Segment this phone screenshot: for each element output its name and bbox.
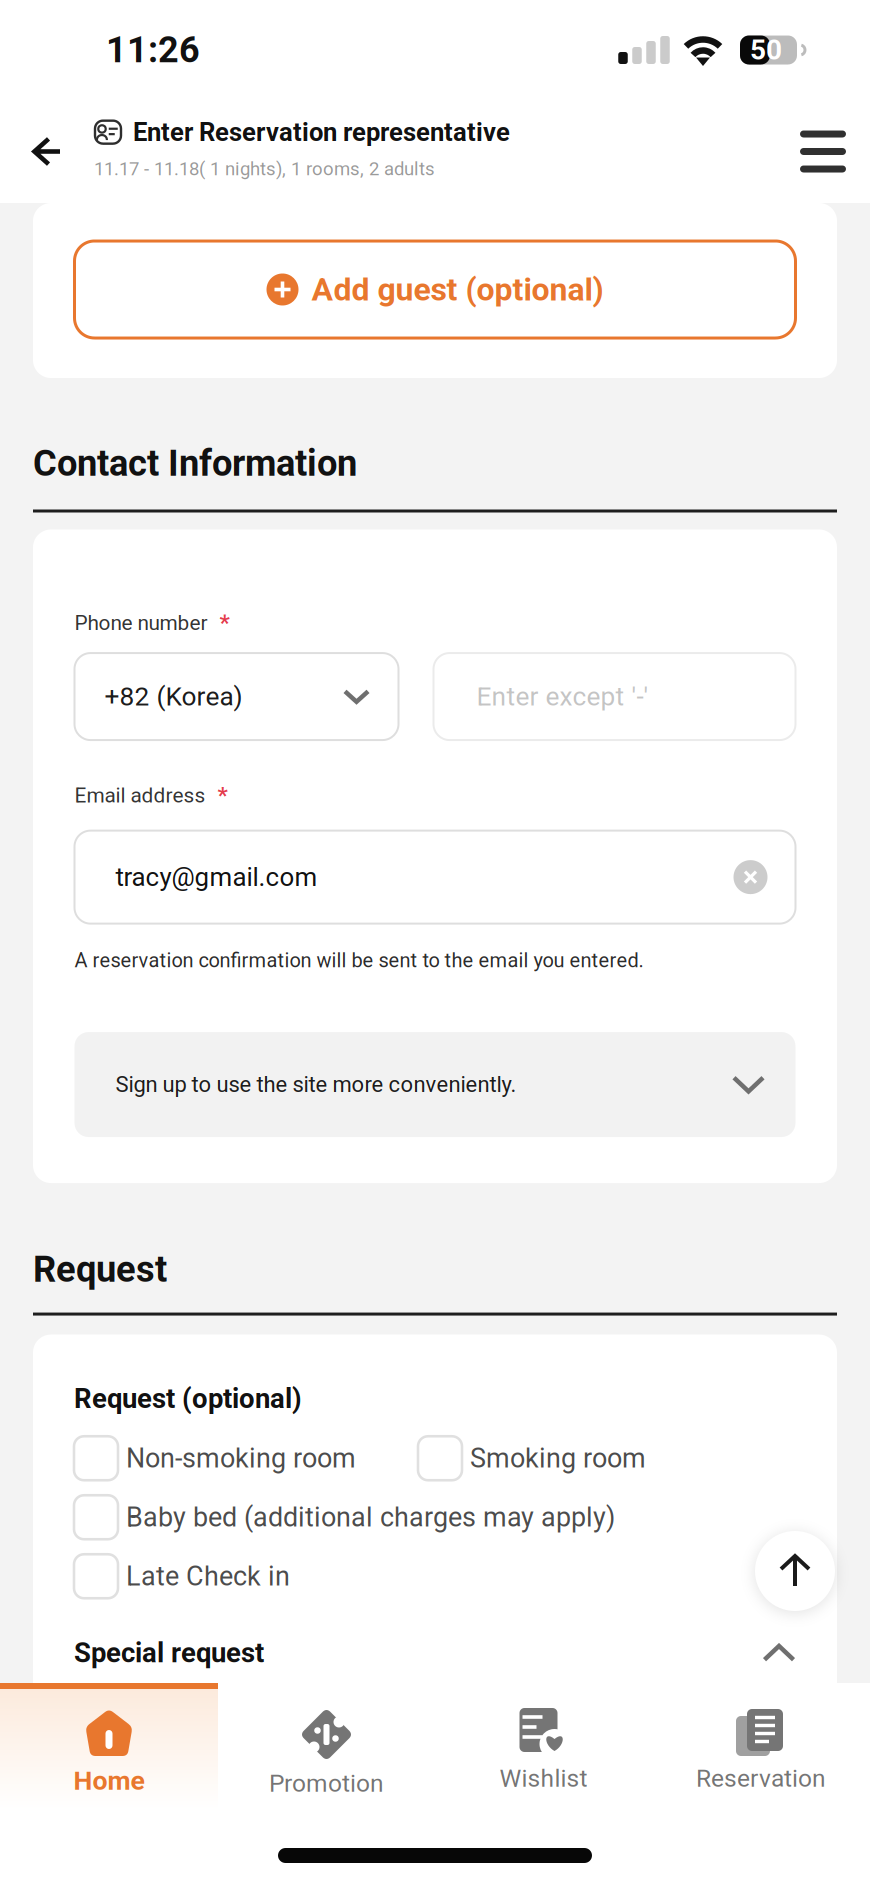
button[interactable]: Non-smoking room [74, 1429, 356, 1488]
staticText: Phone number [74, 611, 207, 635]
button[interactable]: Enter except '-' [433, 653, 795, 740]
button[interactable]: Promotion [218, 1683, 435, 1810]
staticText: Enter Reservation representative [133, 117, 510, 147]
button[interactable]: Late Check in [74, 1547, 290, 1606]
button[interactable]: Back [0, 100, 94, 203]
staticText: Wishlist [499, 1764, 587, 1793]
button[interactable]: Baby bed (additional charges may apply) [74, 1488, 615, 1547]
button[interactable]: Wishlist [435, 1683, 652, 1810]
staticText: Sign up to use the site more convenientl… [115, 1072, 516, 1097]
button[interactable]: tracy@gmail.com [74, 831, 795, 924]
staticText: Enter except '-' [476, 681, 648, 712]
button[interactable]: +82 (Korea) [74, 653, 398, 740]
staticText: Non-smoking room [126, 1442, 356, 1474]
staticText: Add guest (optional) [311, 271, 603, 308]
staticText: 50 [750, 34, 782, 66]
button[interactable]: Reservation [652, 1683, 870, 1810]
button[interactable]: Menu [783, 100, 863, 203]
staticText: * [217, 782, 227, 809]
staticText: * [219, 609, 229, 636]
staticText: Promotion [269, 1769, 384, 1798]
staticText: Smoking room [470, 1442, 646, 1474]
staticText: tracy@gmail.com [115, 862, 317, 892]
button[interactable]: Sign up to use the site more convenientl… [74, 1032, 795, 1137]
staticText: Baby bed (additional charges may apply) [126, 1501, 615, 1533]
staticText: Special request [74, 1637, 264, 1669]
staticText: A reservation confirmation will be sent … [74, 949, 643, 972]
button[interactable]: Home [0, 1683, 218, 1810]
button[interactable]: Smoking room [418, 1429, 646, 1488]
button[interactable]: Add guest (optional) [74, 241, 795, 338]
staticText: 11:26 [106, 29, 200, 71]
button[interactable]: Scroll to top [755, 1531, 835, 1611]
staticText: Request (optional) [74, 1383, 302, 1415]
staticText: Contact Information [33, 442, 357, 484]
staticText: Reservation [696, 1764, 826, 1793]
staticText: Email address [74, 783, 205, 808]
staticText: Late Check in [126, 1560, 290, 1592]
staticText: 11.17 - 11.18( 1 nights), 1 rooms, 2 adu… [94, 158, 435, 180]
staticText: +82 (Korea) [104, 681, 242, 712]
staticText: Request [33, 1248, 167, 1291]
staticText: Home [73, 1765, 144, 1796]
